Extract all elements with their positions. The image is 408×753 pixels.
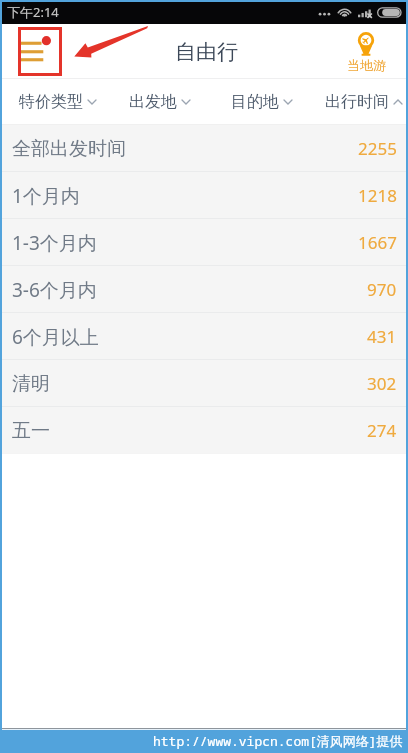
staticText: 1667 xyxy=(358,231,397,254)
staticText: http://www.vipcn.com[清风网络]提供 xyxy=(153,732,403,750)
staticText: 2255 xyxy=(358,137,397,160)
staticText: 出行时间 xyxy=(325,92,389,112)
button[interactable]: 1个月内 xyxy=(0,172,408,219)
button[interactable]: 3-6个月内 xyxy=(0,266,408,313)
button[interactable]: 清明 xyxy=(0,360,408,407)
staticText: 自由行 xyxy=(175,39,238,65)
staticText: 970 xyxy=(367,278,397,301)
staticText: 全部出发时间 xyxy=(12,137,126,161)
staticText: 出发地 xyxy=(129,92,177,112)
button[interactable]: Menu xyxy=(18,27,62,76)
button[interactable]: 目的地 xyxy=(210,79,312,125)
staticText: 274 xyxy=(367,419,397,442)
button[interactable]: 特价类型 xyxy=(6,79,108,125)
button[interactable]: 全部出发时间 xyxy=(0,125,408,172)
staticText: 3-6个月内 xyxy=(12,277,97,303)
staticText: 1-3个月内 xyxy=(12,230,97,256)
staticText: 1个月内 xyxy=(12,183,80,209)
button[interactable]: 6个月以上 xyxy=(0,313,408,360)
staticText: 6个月以上 xyxy=(12,324,99,350)
button[interactable]: 五一 xyxy=(0,407,408,454)
staticText: 清明 xyxy=(12,372,50,396)
staticText: 特价类型 xyxy=(19,92,83,112)
staticText: 下午2:14 xyxy=(7,3,59,21)
staticText: 当地游 xyxy=(347,57,386,73)
staticText: 目的地 xyxy=(231,92,279,112)
staticText: 1218 xyxy=(358,184,397,207)
button[interactable]: 当地游 xyxy=(344,24,388,79)
button[interactable]: 出行时间 xyxy=(312,79,408,125)
button[interactable]: 1-3个月内 xyxy=(0,219,408,266)
staticText: 431 xyxy=(367,325,397,348)
button[interactable]: 出发地 xyxy=(108,79,210,125)
staticText: 302 xyxy=(367,372,397,395)
staticText: 五一 xyxy=(12,419,50,443)
